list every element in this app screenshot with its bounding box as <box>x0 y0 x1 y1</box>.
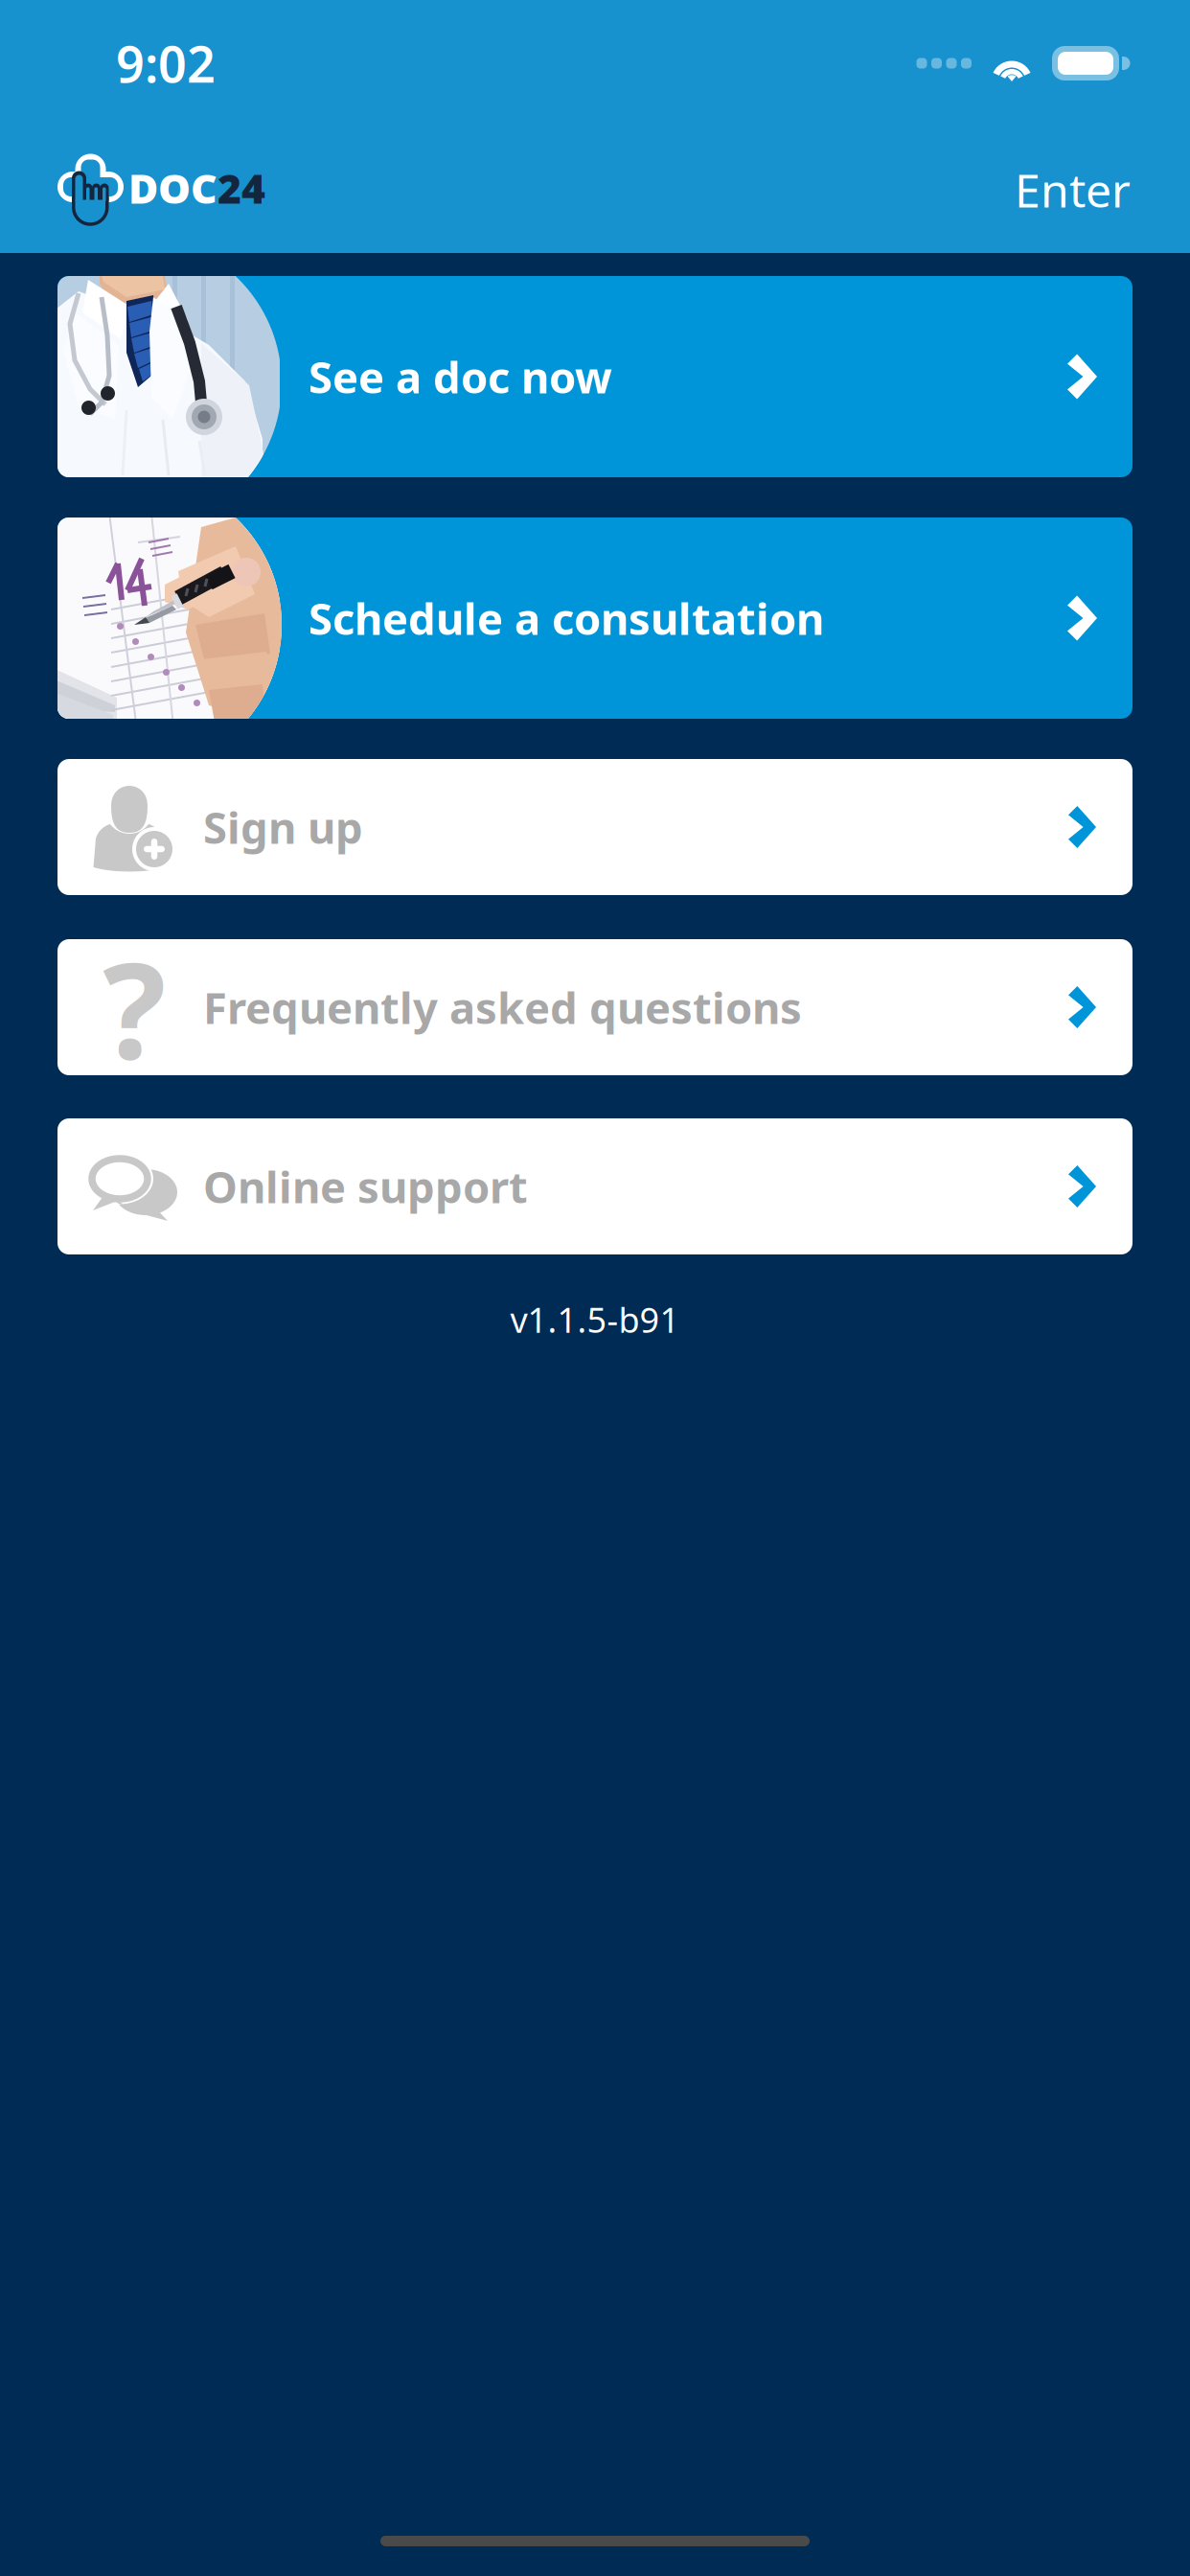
button[interactable]: Enter <box>986 140 1131 239</box>
staticText: See a doc now <box>309 348 612 405</box>
button[interactable]: Schedule a consultation <box>57 517 1133 719</box>
button[interactable]: ? <box>57 939 1133 1075</box>
staticText: 9:02 <box>116 30 216 96</box>
staticText: Enter <box>1015 159 1131 220</box>
button[interactable]: Sign up <box>57 759 1133 895</box>
staticText: DOC <box>128 161 217 215</box>
button[interactable]: Online support <box>57 1118 1133 1254</box>
staticText: 24 <box>217 161 265 215</box>
staticText: ? <box>103 919 166 1095</box>
staticText: Sign up <box>203 798 363 856</box>
button[interactable]: See a doc now <box>57 276 1133 477</box>
staticText: Online support <box>203 1158 528 1215</box>
staticText: v1.1.5-b91 <box>510 1297 680 1342</box>
staticText: Frequently asked questions <box>203 978 802 1036</box>
staticText: Schedule a consultation <box>309 589 824 647</box>
